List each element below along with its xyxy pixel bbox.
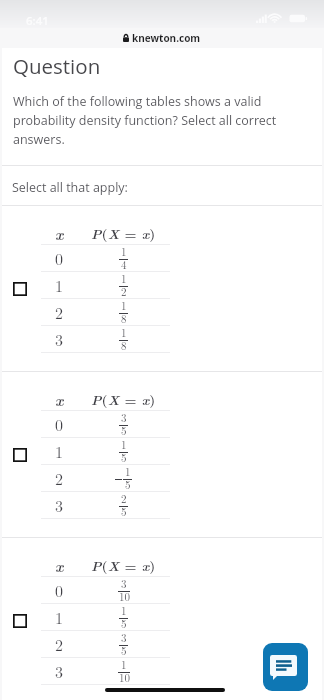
staticText: P(X = x) <box>91 556 156 576</box>
staticText: 5 <box>121 643 127 659</box>
staticText: 1 <box>125 464 131 480</box>
staticText: P(X = x) <box>91 390 156 410</box>
staticText: 3 <box>55 494 64 517</box>
staticText: 5 <box>121 616 127 632</box>
staticText: 5 <box>121 504 127 520</box>
staticText: 2 <box>55 633 64 656</box>
staticText: 10 <box>119 589 130 605</box>
button[interactable]: x <box>2 538 322 700</box>
button[interactable]: x <box>2 206 322 371</box>
staticText: x <box>55 389 64 410</box>
staticText: 1 <box>55 606 64 629</box>
staticText: 1 <box>55 440 64 463</box>
staticText: knewton.com <box>132 31 201 45</box>
staticText: 3 <box>55 328 64 351</box>
staticText: 6:41 <box>26 13 49 29</box>
staticText: 3 <box>121 410 127 426</box>
staticText: 2 <box>121 491 127 507</box>
staticText: x <box>55 555 64 576</box>
button[interactable]: Open chat <box>263 643 308 691</box>
staticText: 4 <box>121 257 127 273</box>
staticText: 0 <box>55 413 64 436</box>
staticText: Select all that apply: <box>12 179 128 196</box>
staticText: 5 <box>125 477 131 493</box>
staticText: 1 <box>55 274 64 297</box>
staticText: 1 <box>121 603 127 619</box>
staticText: 3 <box>55 660 64 683</box>
staticText: 8 <box>121 338 127 354</box>
staticText: 1 <box>121 271 127 287</box>
staticText: 1 <box>121 657 127 673</box>
staticText: 1 <box>121 244 127 260</box>
staticText: 10 <box>119 670 130 686</box>
staticText: 0 <box>55 247 64 270</box>
staticText: 2 <box>121 284 127 300</box>
button[interactable]: x <box>2 372 322 537</box>
staticText: 1 <box>121 325 127 341</box>
staticText: 8 <box>121 311 127 327</box>
staticText: 1 <box>121 298 127 314</box>
staticText: 5 <box>121 450 127 466</box>
staticText: 3 <box>121 630 127 646</box>
staticText: Question <box>13 52 101 80</box>
staticText: P(X = x) <box>91 224 156 244</box>
staticText: 1 <box>121 437 127 453</box>
staticText: 5 <box>121 423 127 439</box>
staticText: Which of the following tables shows a va… <box>13 93 285 147</box>
staticText: x <box>55 223 64 244</box>
staticText: 0 <box>55 579 64 602</box>
staticText: 2 <box>55 467 64 490</box>
staticText: 2 <box>55 301 64 324</box>
staticText: 3 <box>121 576 127 592</box>
